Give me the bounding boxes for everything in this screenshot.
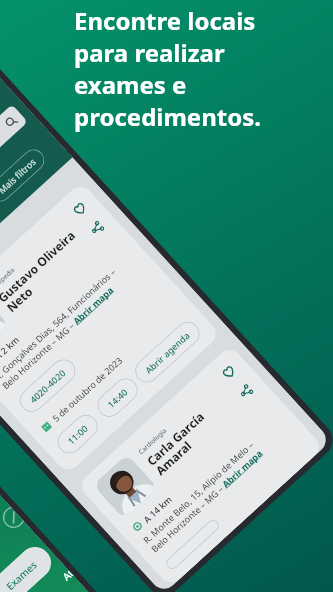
button[interactable]: 4020-4020 — [15, 354, 80, 417]
staticText: Ortopedia — [0, 265, 17, 293]
staticText: 4020-4020 — [27, 366, 68, 405]
staticText: 11:00 — [65, 422, 90, 447]
staticText: A 2 km — [0, 333, 22, 362]
button[interactable]: Abrir agenda — [130, 317, 205, 388]
button[interactable]: Mais filtros — [0, 145, 49, 206]
staticText: Gustavo Oliveira Neto — [0, 227, 87, 316]
button[interactable]: Compartilhar — [86, 217, 108, 240]
staticText: A 14 km — [140, 493, 174, 525]
button[interactable]: Favoritar — [217, 361, 240, 384]
staticText: Abrir agenda — [142, 329, 192, 376]
staticText: Cardiologia — [136, 426, 168, 456]
staticText: Atestados — [59, 567, 75, 583]
button[interactable]: Exames — [0, 104, 28, 263]
staticText: Mais filtros — [0, 155, 38, 196]
button[interactable]: Ortopedia — [0, 182, 221, 475]
staticText: Encontre locais para realizar exames e p… — [74, 4, 262, 133]
staticText: Carla García Amaral — [143, 408, 217, 479]
staticText: Exames — [3, 558, 40, 592]
button[interactable]: Abrir mapa — [219, 446, 265, 490]
button[interactable]: Exames — [0, 505, 25, 534]
staticText: 14:40 — [105, 385, 130, 410]
staticText: 5 de outubro de 2023 — [49, 354, 125, 424]
staticText: R. Monte Belo, 15, Alípio de Melo – — [140, 438, 256, 546]
staticText: R. Gonçalves Dias, 564, Funcionários – — [0, 265, 118, 382]
button[interactable]: 4020-4020 — [164, 517, 221, 571]
button[interactable]: Favoritar — [68, 198, 91, 220]
button[interactable]: Exames — [0, 540, 58, 592]
button[interactable]: Atestados — [49, 563, 79, 592]
button[interactable]: 11:00 — [53, 410, 103, 458]
button[interactable]: Cardiologia — [77, 345, 324, 588]
button[interactable]: 14:40 — [92, 373, 143, 422]
staticText: Belo Horizonte – MG – — [0, 318, 78, 391]
button[interactable]: Compartilhar — [235, 380, 257, 403]
staticText: Belo Horizonte – MG – — [148, 481, 227, 554]
button[interactable]: Abrir mapa — [70, 283, 116, 327]
